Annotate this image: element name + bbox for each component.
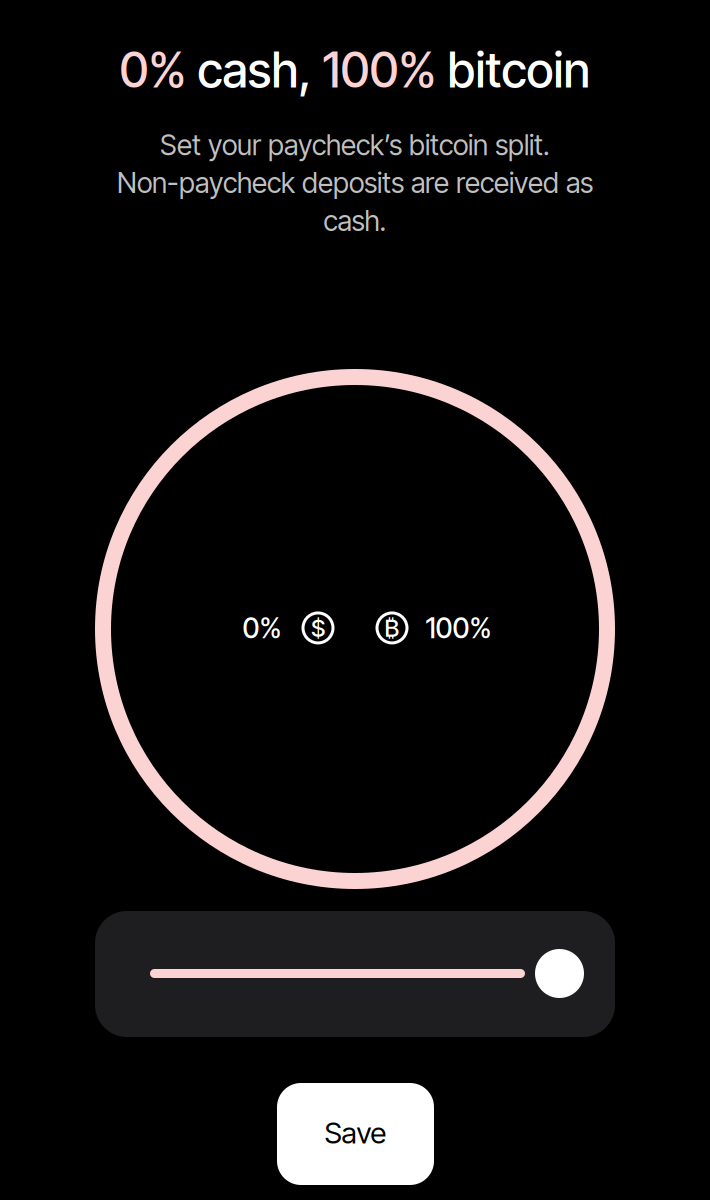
staticText: cash,	[186, 41, 322, 99]
staticText: 0%	[242, 611, 281, 645]
staticText: $	[311, 613, 325, 642]
button[interactable]: Save	[277, 1083, 434, 1185]
button[interactable]: Paycheck split dial, 0 percent cash, 100…	[95, 369, 615, 889]
staticText: Save	[324, 1115, 386, 1150]
staticText: 0%	[119, 41, 186, 99]
staticText: Set your paycheck’s bitcoin split.	[160, 128, 550, 162]
staticText: 100%	[322, 41, 436, 99]
staticText: ₿	[384, 613, 399, 642]
staticText: 100%	[425, 611, 491, 645]
staticText: bitcoin	[436, 41, 590, 99]
staticText: cash.	[323, 204, 386, 238]
button[interactable]: Bitcoin percentage slider, 100 percent	[95, 911, 615, 1037]
staticText: Non-paycheck deposits are received as	[117, 166, 593, 200]
